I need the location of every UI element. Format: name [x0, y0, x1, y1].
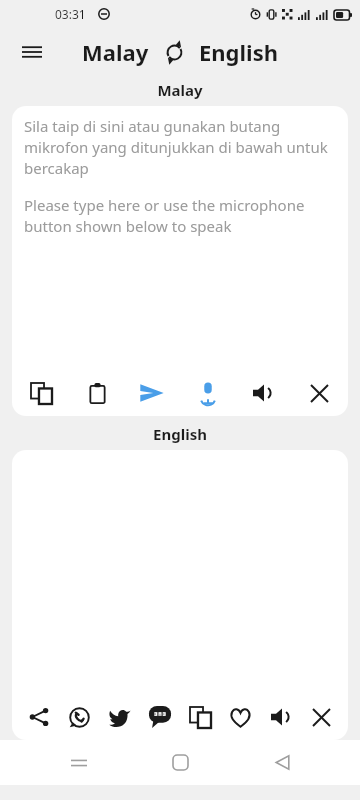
button[interactable]: Menu [10, 30, 54, 74]
button[interactable]: Sila taip di sini atau gunakan butang mi… [12, 106, 348, 370]
button[interactable]: Listen [246, 376, 280, 410]
button[interactable]: Paste [80, 376, 114, 410]
staticText: Please type here or use the microphone b… [24, 195, 336, 237]
button[interactable]: Share [22, 700, 56, 734]
button[interactable]: English [195, 33, 283, 71]
button[interactable]: SMS [143, 700, 177, 734]
staticText: Malay [0, 80, 360, 100]
button[interactable]: Copy [24, 376, 58, 410]
button[interactable]: Home [157, 740, 203, 785]
button[interactable]: Malay [78, 33, 153, 71]
button[interactable]: WhatsApp [62, 700, 96, 734]
button[interactable]: Listen [264, 700, 298, 734]
button[interactable]: Twitter [103, 700, 137, 734]
button[interactable]: Favorite [223, 700, 257, 734]
staticText: Sila taip di sini atau gunakan butang mi… [24, 116, 336, 179]
button[interactable]: Translate [135, 376, 169, 410]
staticText: Malay [82, 37, 149, 67]
button[interactable]: Close [304, 700, 338, 734]
staticText: English [0, 424, 360, 444]
button[interactable]: Back [259, 740, 305, 785]
button[interactable]: Copy [183, 700, 217, 734]
staticText: English [199, 37, 279, 67]
button[interactable]: Clear [302, 376, 336, 410]
staticText: 03:31 [55, 6, 86, 22]
button[interactable]: Recents [56, 740, 102, 785]
button[interactable]: Speak [191, 376, 225, 410]
button[interactable]: Swap languages [159, 37, 189, 67]
